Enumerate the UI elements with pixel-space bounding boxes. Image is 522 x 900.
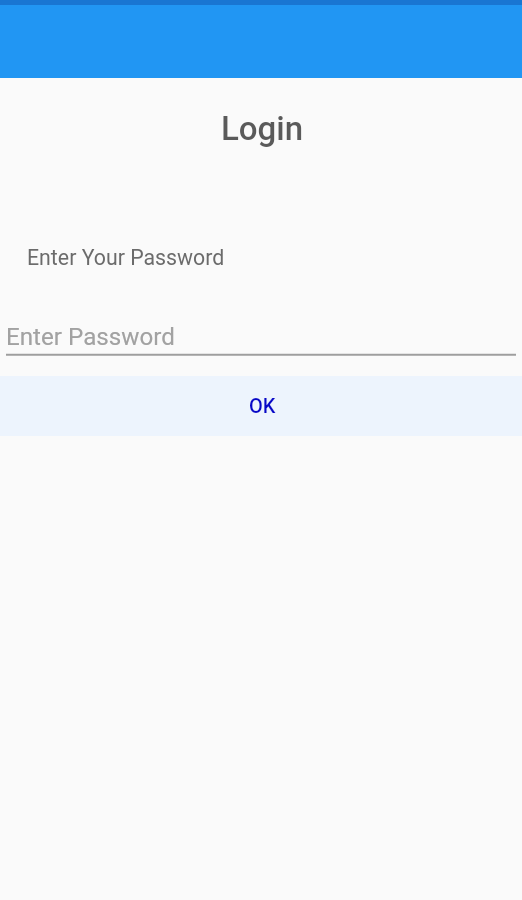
staticText: Login [1,109,522,148]
staticText: Enter Password [6,323,175,351]
staticText: OK [249,394,276,417]
button[interactable]: OK [0,376,522,436]
staticText: Enter Your Password [27,245,225,270]
button[interactable]: Enter Password [0,320,522,365]
